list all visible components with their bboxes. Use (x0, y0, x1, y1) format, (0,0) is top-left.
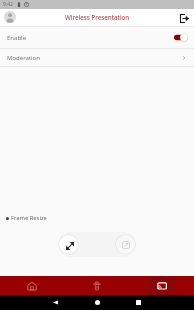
button[interactable]: Enable (0, 27, 194, 48)
button[interactable]: Home (0, 276, 64, 295)
staticText: Frame Resize (11, 214, 47, 222)
button[interactable]: Expand frame (58, 234, 79, 255)
button[interactable]: Cast screen (129, 276, 194, 295)
button[interactable]: Home (92, 297, 103, 308)
button[interactable]: Fit frame (115, 234, 136, 255)
button[interactable]: Back (50, 297, 61, 308)
staticText: 9:42 (3, 1, 13, 8)
button[interactable]: Recent apps (133, 297, 144, 308)
staticText: Moderation (7, 54, 40, 62)
button[interactable]: Account (4, 11, 16, 23)
staticText: Wireless Presentation (65, 13, 130, 21)
button[interactable]: Documents (64, 276, 129, 295)
button[interactable]: Moderation (0, 49, 194, 66)
staticText: Enable (7, 34, 27, 42)
button[interactable]: Exit (178, 12, 190, 24)
